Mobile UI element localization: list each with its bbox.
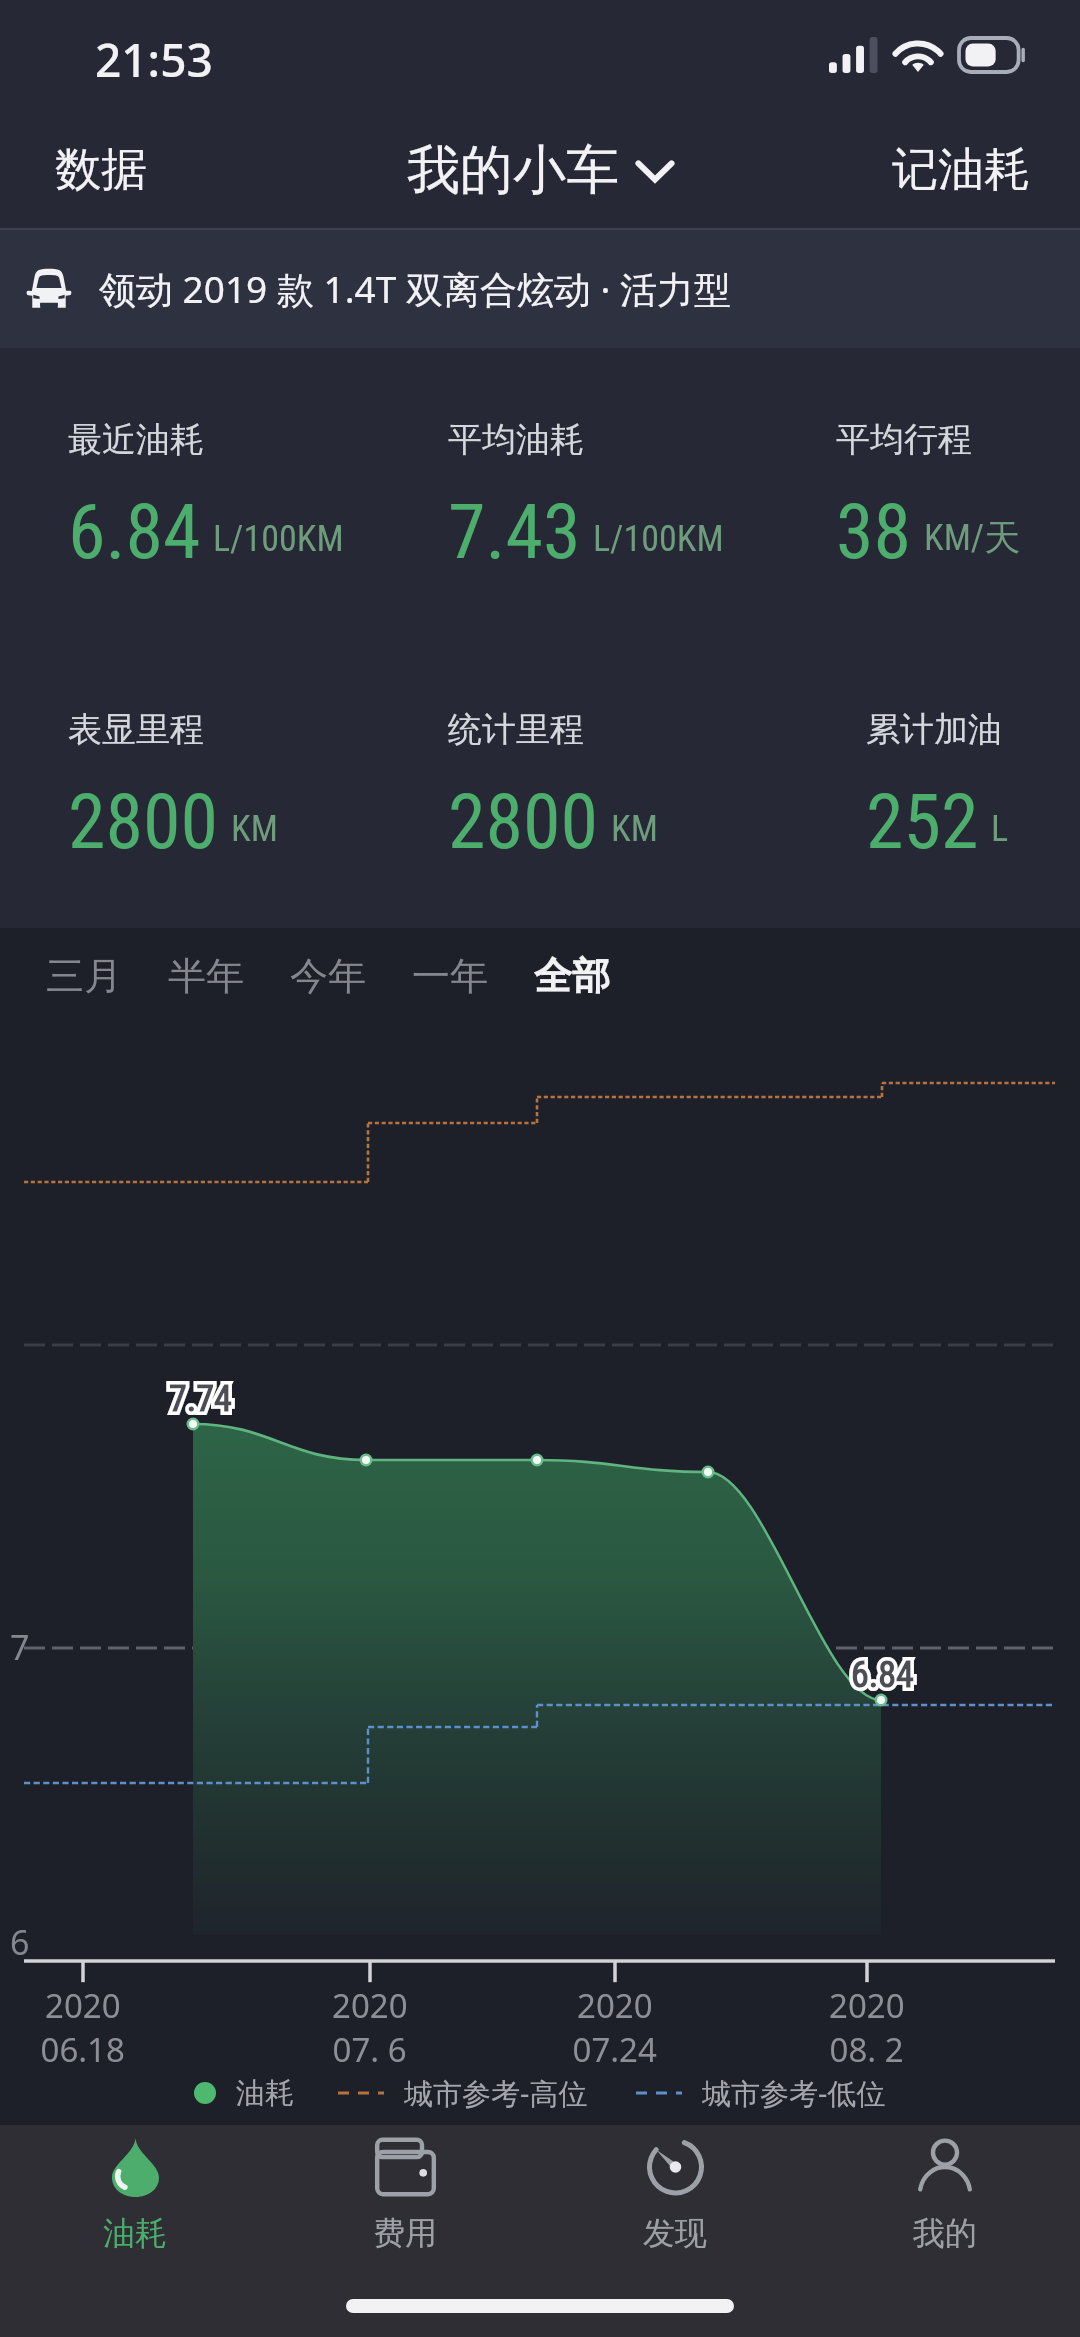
button[interactable]: 我的小车 bbox=[389, 123, 691, 218]
staticText: 城市参考-高位 bbox=[404, 2073, 588, 2113]
button[interactable]: 一年 bbox=[386, 928, 514, 1020]
staticText: 2800 bbox=[448, 777, 599, 866]
staticText: KM bbox=[611, 808, 658, 850]
staticText: 三月 bbox=[46, 952, 122, 996]
other: 我的 bbox=[917, 2137, 973, 2197]
other: 发现 bbox=[646, 2137, 705, 2197]
staticText: L/100KM bbox=[213, 518, 344, 560]
staticText: 记油耗 bbox=[892, 141, 1030, 199]
staticText: 最近油耗 bbox=[68, 418, 204, 461]
button[interactable]: 发现 bbox=[540, 2125, 810, 2265]
button[interactable]: 费用 bbox=[270, 2125, 540, 2265]
button[interactable]: 我的 bbox=[810, 2125, 1080, 2265]
staticText: 6.84 bbox=[68, 487, 201, 576]
other: 费用 bbox=[376, 2138, 435, 2196]
other: 油耗 bbox=[112, 2138, 159, 2197]
staticText: 全部 bbox=[534, 952, 610, 996]
staticText: L bbox=[991, 808, 1009, 850]
staticText: 城市参考-低位 bbox=[702, 2073, 886, 2113]
staticText: 表显里程 bbox=[68, 708, 204, 751]
staticText: 油耗 bbox=[236, 2075, 294, 2112]
button[interactable]: 油耗 bbox=[0, 2125, 270, 2265]
staticText: 平均行程 bbox=[836, 418, 972, 461]
button[interactable]: 数据 bbox=[0, 117, 177, 223]
staticText: 一年 bbox=[412, 952, 488, 996]
staticText: 21:53 bbox=[95, 28, 213, 91]
staticText: 统计里程 bbox=[448, 708, 584, 751]
staticText: 我的小车 bbox=[407, 137, 619, 204]
staticText: 38 bbox=[836, 487, 912, 576]
staticText: KM/天 bbox=[924, 515, 1021, 560]
button[interactable]: 记油耗 bbox=[862, 117, 1080, 223]
staticText: 2800 bbox=[68, 777, 219, 866]
staticText: 今年 bbox=[290, 952, 366, 996]
button[interactable]: 半年 bbox=[142, 928, 270, 1020]
button[interactable]: 今年 bbox=[264, 928, 392, 1020]
staticText: 7.43 bbox=[448, 487, 581, 576]
button[interactable]: 三月 bbox=[20, 928, 148, 1020]
staticText: 发现 bbox=[643, 2213, 707, 2253]
staticText: 平均油耗 bbox=[448, 418, 584, 461]
staticText: 油耗 bbox=[103, 2213, 167, 2253]
staticText: 数据 bbox=[55, 141, 147, 199]
staticText: 半年 bbox=[168, 952, 244, 996]
staticText: L/100KM bbox=[593, 518, 724, 560]
button[interactable]: 全部 bbox=[508, 928, 636, 1020]
staticText: 我的 bbox=[913, 2213, 977, 2253]
staticText: 费用 bbox=[373, 2213, 437, 2253]
button[interactable]: 领动 2019 款 1.4T 双离合炫动 · 活力型 bbox=[0, 228, 1080, 348]
staticText: 累计加油 bbox=[866, 708, 1002, 751]
staticText: KM bbox=[231, 808, 278, 850]
staticText: 252 bbox=[866, 777, 979, 866]
staticText: 领动 2019 款 1.4T 双离合炫动 · 活力型 bbox=[99, 263, 732, 314]
